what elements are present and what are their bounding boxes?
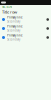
- staticText: Secondary: [7, 20, 20, 23]
- staticText: Primary line: [7, 16, 23, 19]
- staticText: Secondary: [7, 38, 20, 41]
- staticText: SECTION: [2, 5, 12, 9]
- staticText: Title row: [2, 9, 17, 15]
- staticText: Primary line: [7, 25, 23, 28]
- staticText: Primary line: [7, 34, 23, 37]
- staticText: Secondary: [7, 29, 20, 32]
